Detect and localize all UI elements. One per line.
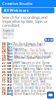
staticText: 08 Dec (2, 42, 12, 46)
staticText: Pattern Matching Made Simple (12, 67, 53, 71)
button[interactable]: 15 Sep (2, 80, 54, 83)
staticText: 20 Oct (2, 64, 11, 68)
button[interactable]: 20 Oct (2, 64, 54, 67)
button[interactable]: 01 Dec (2, 46, 54, 49)
button[interactable]: Search (44, 38, 53, 42)
staticText: 27 Oct (2, 61, 11, 65)
staticText: Search for recordings and (2, 14, 47, 20)
staticText: The Best Practice Panel (13, 42, 45, 46)
button[interactable]: Presenter (2, 34, 14, 38)
button[interactable]: 24 Nov (2, 49, 54, 52)
button[interactable]: 10 Nov (2, 55, 54, 58)
staticText: Presenter (3, 33, 14, 40)
staticText: Ambience Collection Preview (12, 64, 52, 68)
button[interactable]: 29 Sep (2, 74, 54, 77)
button[interactable]: 25 Aug (2, 89, 54, 92)
staticText: Creative Studio (2, 1, 32, 6)
button[interactable]: 01 Sep (2, 86, 54, 89)
staticText: Keyword (3, 29, 14, 32)
staticText: 13 Oct (2, 67, 11, 71)
button[interactable]: 22 Sep (2, 77, 54, 80)
staticText: Small Spaces, Big Impact (14, 89, 45, 92)
staticText: Making It Big: Large Formats (14, 55, 51, 58)
button[interactable]: 27 Oct (2, 61, 54, 64)
staticText: Cornice Boards Step by Step (13, 86, 52, 89)
button[interactable]: 17 Nov (2, 52, 54, 55)
staticText: Search (44, 38, 53, 42)
staticText: 25 Aug (2, 89, 13, 92)
staticText: consultant. (2, 22, 20, 28)
button[interactable]: 13 Oct (2, 67, 54, 71)
staticText: Pricing Your Work Correctly (13, 83, 50, 86)
staticText: 01 Sep (2, 86, 12, 89)
staticText: 18 Aug (2, 92, 13, 96)
staticText: Fabric Care, Tips & Tricks (14, 49, 45, 52)
staticText: inspiration by date, topic or (2, 18, 48, 24)
staticText: All Webinars (3, 8, 28, 13)
staticText: 06 Oct (2, 70, 11, 74)
staticText: Autumn Update with the Team (14, 56, 49, 63)
staticText: Softer Textures in the Home (12, 61, 50, 65)
staticText: Wide Width Fabrics Explained (13, 77, 52, 80)
staticText: 29 Sep (2, 73, 12, 77)
staticText: 17 Nov (2, 52, 13, 55)
staticText: Window Dressing for Winter (14, 52, 53, 55)
button[interactable]: 08 Dec (2, 43, 54, 46)
button[interactable]: 03 Nov (2, 58, 54, 61)
button[interactable]: 08 Sep (2, 83, 54, 86)
staticText: Measure Up: A Refresher (13, 73, 48, 77)
staticText: 08 Sep (2, 83, 12, 86)
staticText: 22 Sep (2, 77, 12, 80)
staticText: Blind Basics for Beginners (14, 92, 51, 96)
staticText: Choosing the Right Lining (12, 70, 51, 74)
staticText: Colour Talks: Autumn Palettes (13, 44, 42, 51)
staticText: 24 Nov (2, 49, 13, 52)
button[interactable]: Keyword (2, 29, 14, 33)
staticText: 15 Sep (2, 80, 12, 83)
staticText: 01 Dec (2, 46, 12, 49)
button[interactable]: Messages (47, 91, 54, 98)
staticText: 03 Nov (2, 58, 13, 61)
button[interactable]: 06 Oct (2, 71, 54, 74)
staticText: 10 Nov (2, 55, 13, 58)
staticText: Trade Insights with Sarah (13, 80, 46, 83)
button[interactable]: 18 Aug (2, 92, 54, 95)
